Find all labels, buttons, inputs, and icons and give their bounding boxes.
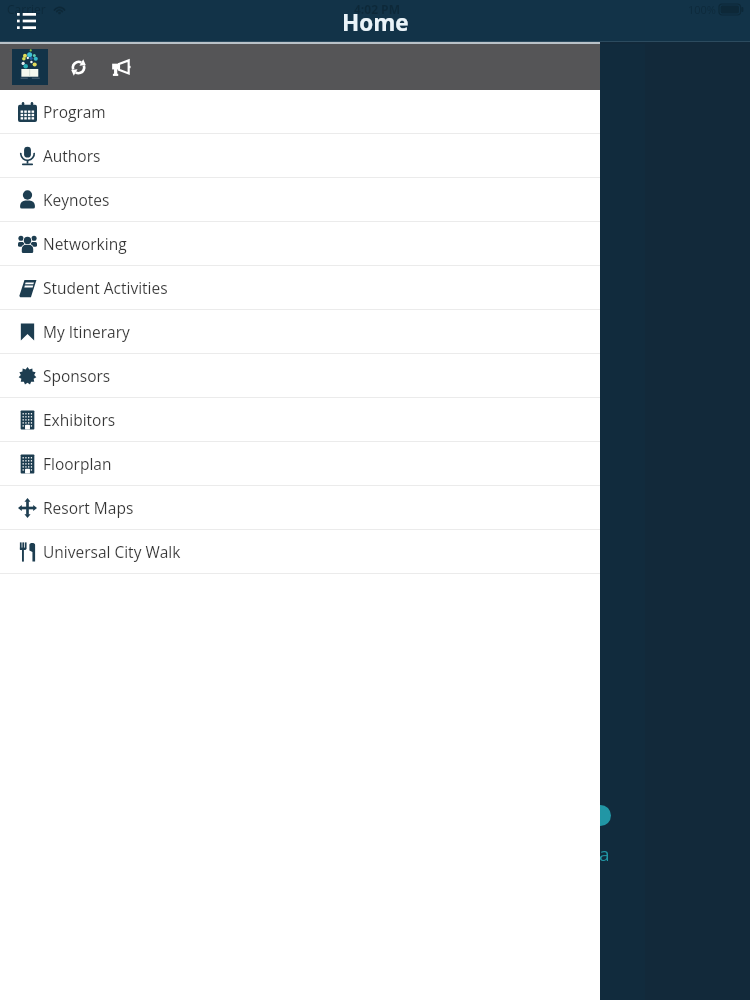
button[interactable]: Keynotes	[0, 178, 600, 222]
button[interactable]: Student Activities	[0, 266, 600, 310]
staticText: 4:02 PM	[354, 1, 400, 17]
button[interactable]: Networking	[0, 222, 600, 266]
staticText: Networking	[43, 233, 127, 254]
button[interactable]: Resort Maps	[0, 486, 600, 530]
staticText: Carrier	[7, 1, 46, 17]
staticText: Authors	[43, 145, 101, 166]
button[interactable]: Universal City Walk	[0, 530, 600, 574]
staticText: Sponsors	[43, 365, 111, 386]
staticText: Program	[43, 101, 106, 122]
staticText: Keynotes	[43, 189, 110, 210]
staticText: Home	[342, 7, 409, 38]
button[interactable]: My Itinerary	[0, 310, 600, 354]
button[interactable]: Sponsors	[0, 354, 600, 398]
button[interactable]: Authors	[0, 134, 600, 178]
button[interactable]: Refresh	[64, 53, 93, 82]
staticText: Exhibitors	[43, 409, 116, 430]
staticText: Resort Maps	[43, 497, 134, 518]
staticText: Floorplan	[43, 453, 112, 474]
button[interactable]: Announcements	[105, 53, 135, 82]
button[interactable]: Program	[0, 90, 600, 134]
staticText: My Itinerary	[43, 321, 130, 342]
staticText: 100%	[688, 2, 716, 17]
button[interactable]: Menu	[11, 7, 42, 34]
staticText: Universal City Walk	[43, 541, 181, 562]
staticText: a	[599, 841, 610, 867]
button[interactable]: Exhibitors	[0, 398, 600, 442]
button[interactable]: Floorplan	[0, 442, 600, 486]
staticText: Student Activities	[43, 277, 168, 298]
button[interactable]: App logo	[12, 49, 48, 85]
